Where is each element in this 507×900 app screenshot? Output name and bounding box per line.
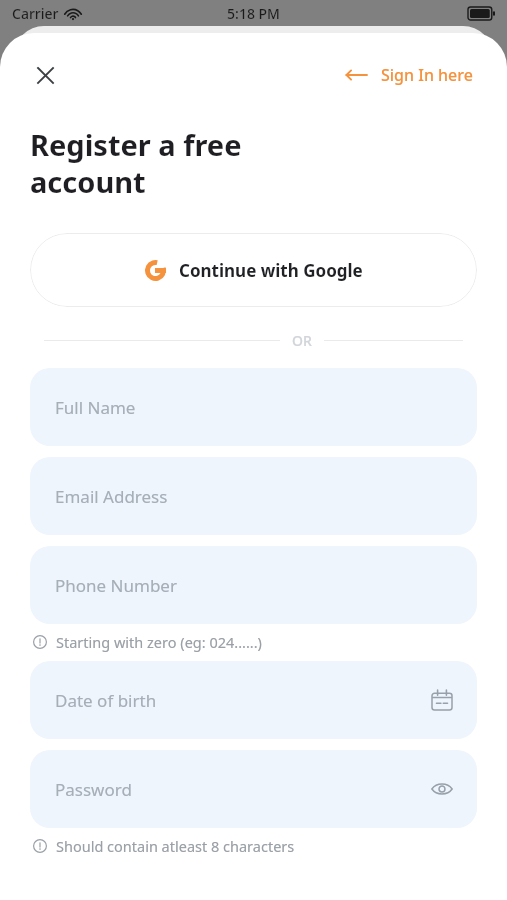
staticText: Password xyxy=(55,778,132,801)
staticText: Phone Number xyxy=(55,574,177,597)
button[interactable]: Pick date xyxy=(429,687,455,713)
button[interactable]: Email Address xyxy=(30,457,477,535)
button[interactable]: Full Name xyxy=(30,368,477,446)
staticText: Continue with Google xyxy=(179,259,363,282)
button[interactable]: Continue with Google xyxy=(30,233,477,307)
button[interactable]: Sign In here xyxy=(342,58,477,92)
staticText: Carrier xyxy=(12,4,59,23)
button[interactable]: Phone Number xyxy=(30,546,477,624)
staticText: Date of birth xyxy=(55,689,157,712)
staticText: Starting with zero (eg: 024......) xyxy=(56,632,262,652)
button[interactable]: Date of birth xyxy=(30,661,477,739)
staticText: Email Address xyxy=(55,485,168,508)
button[interactable]: Show password xyxy=(429,776,455,802)
staticText: Full Name xyxy=(55,396,136,419)
staticText: OR xyxy=(292,331,312,349)
staticText: 5:18 PM xyxy=(227,4,280,23)
button[interactable]: Password xyxy=(30,750,477,828)
staticText: Should contain atleast 8 characters xyxy=(56,836,295,856)
button[interactable]: Close xyxy=(28,58,62,92)
staticText: Register a free account xyxy=(30,125,242,202)
staticText: Sign In here xyxy=(381,64,473,86)
